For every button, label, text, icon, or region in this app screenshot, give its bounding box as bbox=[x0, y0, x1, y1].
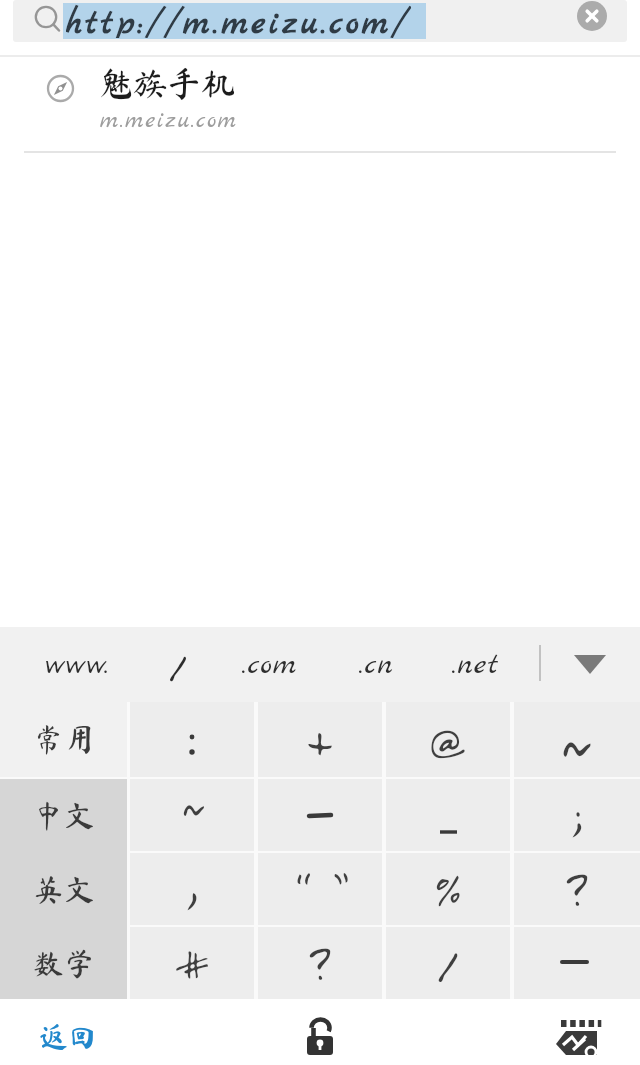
staticText: 中文 bbox=[33, 800, 95, 831]
staticText: m.meizu.com bbox=[100, 105, 238, 136]
button[interactable]: ＋ bbox=[258, 702, 382, 777]
button[interactable]: .net bbox=[431, 627, 521, 702]
button[interactable]: ／ bbox=[148, 627, 208, 702]
button[interactable] bbox=[514, 927, 640, 999]
button[interactable] bbox=[296, 999, 344, 1065]
staticText: ＠ bbox=[421, 713, 475, 767]
staticText: ～ bbox=[545, 708, 609, 772]
button[interactable]: ？ bbox=[514, 853, 640, 925]
staticText: ~ bbox=[181, 779, 204, 827]
button[interactable]: ~ bbox=[130, 779, 254, 851]
button[interactable] bbox=[553, 999, 605, 1065]
button[interactable] bbox=[130, 702, 254, 777]
staticText: http://m.meizu.com/ bbox=[66, 2, 411, 38]
button[interactable] bbox=[386, 779, 510, 851]
button[interactable]: .cn bbox=[332, 627, 422, 702]
button[interactable]: ， bbox=[130, 853, 254, 925]
staticText: 常用 bbox=[33, 724, 95, 755]
staticText: ／ bbox=[154, 641, 203, 689]
button[interactable]: ？ bbox=[258, 927, 382, 999]
staticText: ％ bbox=[421, 862, 475, 916]
button[interactable]: ／ bbox=[386, 927, 510, 999]
button[interactable]: www. bbox=[28, 627, 128, 702]
button[interactable] bbox=[13, 0, 627, 42]
button[interactable]: 中文 bbox=[0, 779, 127, 851]
button[interactable] bbox=[258, 779, 382, 851]
staticText: ； bbox=[549, 787, 605, 843]
button[interactable]: ； bbox=[514, 779, 640, 851]
button[interactable] bbox=[577, 1, 607, 31]
button[interactable]: 英文 bbox=[0, 853, 127, 925]
staticText: ＃ bbox=[166, 937, 219, 989]
staticText: ／ bbox=[420, 935, 476, 991]
button[interactable] bbox=[566, 627, 614, 702]
button[interactable]: .com bbox=[220, 627, 320, 702]
staticText: ＋ bbox=[289, 709, 352, 771]
staticText: ？ bbox=[549, 861, 605, 917]
button[interactable]: ～ bbox=[514, 702, 640, 777]
staticText: 魅族手机 bbox=[99, 66, 235, 100]
button[interactable]: “ ” bbox=[258, 853, 382, 925]
staticText: .cn bbox=[359, 645, 395, 685]
button[interactable]: 数学 bbox=[0, 927, 127, 999]
staticText: ？ bbox=[292, 935, 348, 991]
staticText: www. bbox=[46, 645, 110, 685]
button[interactable]: 返回 bbox=[30, 1004, 106, 1065]
staticText: 数学 bbox=[33, 948, 95, 979]
button[interactable]: ％ bbox=[386, 853, 510, 925]
button[interactable]: ＃ bbox=[130, 927, 254, 999]
staticText: “ ” bbox=[295, 864, 346, 914]
button[interactable]: 常用 bbox=[0, 702, 127, 777]
staticText: ， bbox=[164, 855, 220, 911]
button[interactable] bbox=[0, 57, 640, 151]
staticText: .com bbox=[242, 645, 298, 685]
button[interactable]: ＠ bbox=[386, 702, 510, 777]
staticText: 返回 bbox=[39, 1021, 98, 1050]
staticText: 英文 bbox=[33, 874, 95, 905]
staticText: .net bbox=[452, 645, 500, 685]
